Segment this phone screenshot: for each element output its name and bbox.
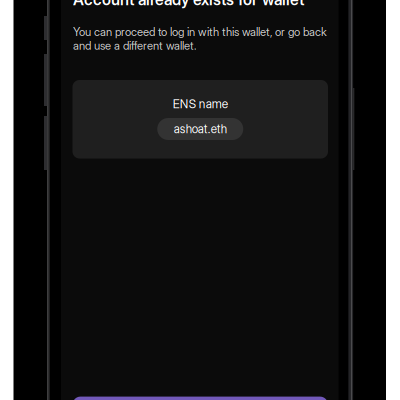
button[interactable]: Proceed bbox=[72, 397, 328, 400]
staticText: ENS name bbox=[173, 96, 228, 111]
staticText: Account already exists for wallet bbox=[73, 0, 304, 9]
staticText: You can proceed to log in with this wall… bbox=[73, 25, 327, 52]
staticText: ashoat.eth bbox=[174, 122, 227, 136]
